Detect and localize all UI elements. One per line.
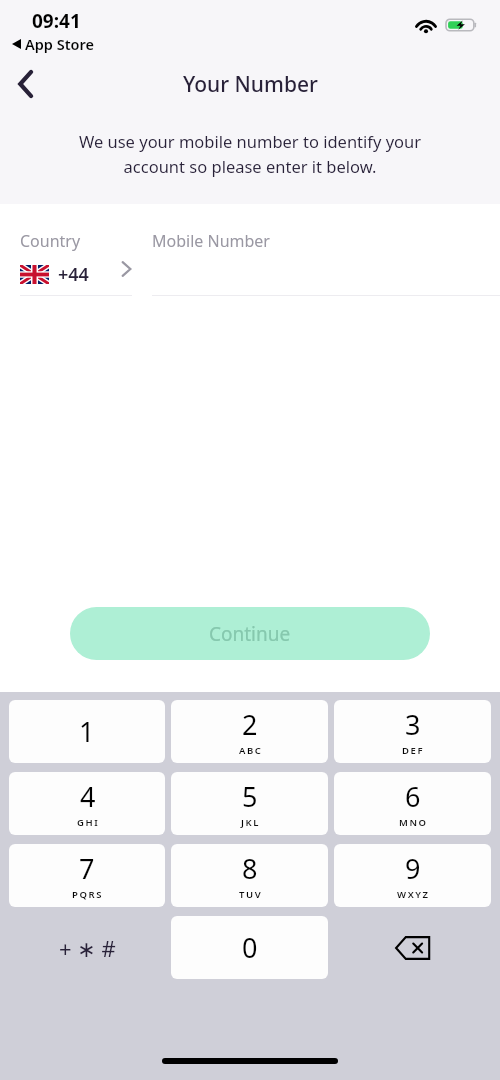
staticText: 2 <box>242 706 258 743</box>
staticText: W X Y Z <box>397 888 429 901</box>
staticText: A B C <box>239 744 261 757</box>
button[interactable]: 7 <box>9 844 165 907</box>
button[interactable]: 8 <box>171 844 328 907</box>
staticText: Continue <box>209 621 291 647</box>
button[interactable]: Back <box>0 58 52 110</box>
button[interactable]: Mobile Number <box>150 204 500 304</box>
button[interactable]: 1 <box>9 700 165 763</box>
button[interactable]: 0 <box>171 916 328 979</box>
staticText: Mobile Number <box>152 230 270 252</box>
button[interactable]: 3 <box>334 700 491 763</box>
staticText: Country <box>20 230 81 252</box>
button[interactable]: Continue <box>70 607 430 660</box>
staticText: +44 <box>58 262 89 287</box>
staticText: 4 <box>80 778 96 815</box>
button[interactable]: 4 <box>9 772 165 835</box>
button[interactable]: 6 <box>334 772 491 835</box>
staticText: J K L <box>241 816 259 829</box>
staticText: 9 <box>405 850 421 887</box>
button[interactable]: Backspace <box>334 916 491 979</box>
button[interactable]: Symbols <box>9 916 165 979</box>
staticText: D E F <box>402 744 423 757</box>
staticText: T U V <box>239 888 261 901</box>
staticText: 7 <box>79 850 95 887</box>
staticText: We use your mobile number to identify yo… <box>28 130 472 177</box>
staticText: 8 <box>242 850 258 887</box>
staticText: G H I <box>77 816 98 829</box>
staticText: P Q R S <box>72 888 102 901</box>
button[interactable]: Country <box>0 204 150 304</box>
staticText: 0 <box>242 929 258 966</box>
staticText: + ∗ # <box>59 933 116 963</box>
staticText: 09:41 <box>32 8 81 34</box>
staticText: 6 <box>405 778 421 815</box>
staticText: App Store <box>25 34 94 54</box>
staticText: 3 <box>405 706 421 743</box>
button[interactable]: 9 <box>334 844 491 907</box>
button[interactable]: 5 <box>171 772 328 835</box>
staticText: M N O <box>399 816 427 829</box>
staticText: 5 <box>242 778 258 815</box>
staticText: Your Number <box>183 70 318 99</box>
button[interactable]: 2 <box>171 700 328 763</box>
staticText: 1 <box>79 713 95 750</box>
